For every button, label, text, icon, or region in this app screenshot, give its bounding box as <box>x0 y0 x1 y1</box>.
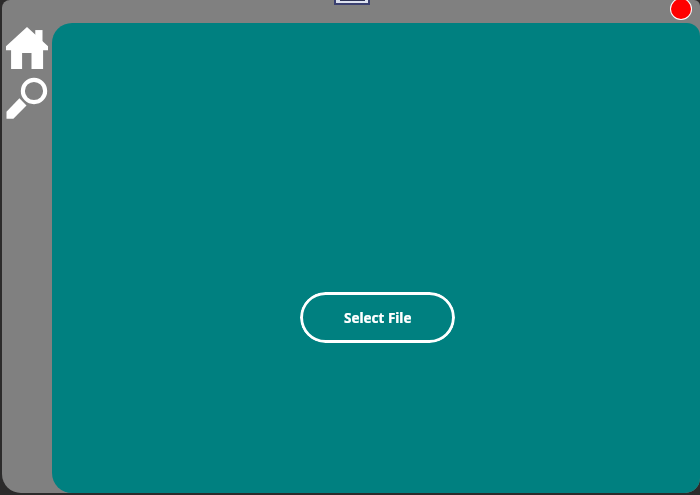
staticText: Select File <box>344 309 412 327</box>
button[interactable]: Search <box>2 73 51 123</box>
button[interactable]: Select File <box>300 292 455 343</box>
button[interactable]: Home <box>2 23 51 73</box>
button[interactable]: Record <box>671 0 691 19</box>
